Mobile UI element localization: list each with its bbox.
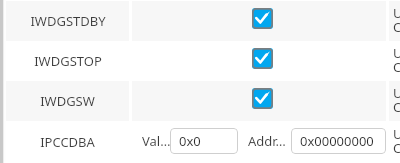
staticText: U C xyxy=(393,125,400,157)
staticText: 0x0 xyxy=(179,132,201,150)
button[interactable]: IWDGSW xyxy=(6,81,129,121)
staticText: 0x00000000 xyxy=(300,132,374,150)
button[interactable]: Toggle checkbox xyxy=(252,88,273,109)
button[interactable]: IWDGSTOP xyxy=(6,41,129,81)
button[interactable]: IPCCDBA xyxy=(6,121,129,163)
staticText: IWDGSW xyxy=(40,92,95,110)
staticText: U C xyxy=(393,4,400,36)
staticText: U C xyxy=(393,84,400,116)
staticText: IWDGSTOP xyxy=(34,52,102,70)
button[interactable]: 0x0 xyxy=(170,128,238,154)
button[interactable]: 0x00000000 xyxy=(291,128,386,154)
button[interactable]: Toggle checkbox xyxy=(252,48,273,69)
staticText: Val… xyxy=(142,132,171,150)
button[interactable]: IWDGSTDBY xyxy=(6,1,129,41)
staticText: IWDGSTDBY xyxy=(30,12,106,30)
staticText: IPCCDBA xyxy=(40,133,95,151)
staticText: Addr… xyxy=(248,132,286,150)
staticText: U C xyxy=(393,44,400,76)
button[interactable]: Toggle checkbox xyxy=(252,8,273,29)
